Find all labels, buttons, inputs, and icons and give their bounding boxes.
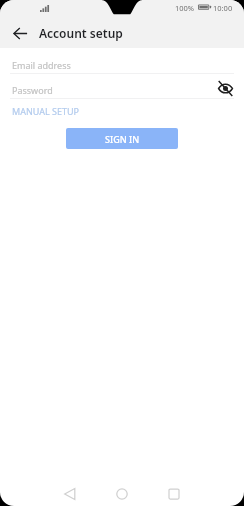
staticText: 100% [175, 3, 195, 13]
button[interactable]: Email address [0, 56, 244, 73]
staticText: Account setup [39, 25, 123, 41]
button[interactable]: Back [6, 19, 34, 47]
staticText: 10:00 [213, 3, 233, 13]
staticText: Password [12, 84, 53, 96]
button[interactable]: Back [53, 478, 86, 506]
staticText: MANUAL SETUP [12, 105, 80, 117]
button[interactable]: Recents [157, 478, 190, 506]
staticText: Email address [12, 59, 71, 71]
button[interactable]: Home [105, 478, 138, 506]
button[interactable]: MANUAL SETUP [12, 105, 80, 117]
staticText: SIGN IN [105, 133, 140, 145]
button[interactable]: Password [0, 81, 244, 98]
button[interactable]: SIGN IN [66, 128, 178, 149]
button[interactable]: Show password [216, 80, 234, 97]
